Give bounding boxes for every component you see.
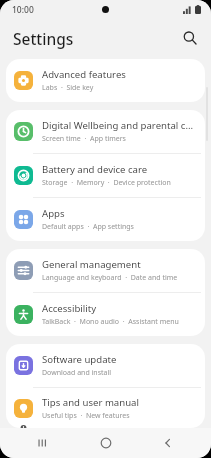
staticText: Software update [42, 353, 117, 366]
staticText: 10:00 [12, 4, 34, 16]
staticText: Settings [13, 28, 74, 49]
staticText: Accessibility [42, 302, 97, 315]
button[interactable]: Back [148, 428, 188, 458]
button[interactable]: Apps [6, 198, 205, 241]
button[interactable]: Home [86, 428, 126, 458]
button[interactable]: Software update [6, 344, 205, 387]
button[interactable]: Advanced features [6, 59, 205, 102]
staticText: Tips and user manual [42, 396, 139, 409]
staticText: Language and keyboard · Date and time [42, 273, 178, 283]
staticText: Battery and device care [42, 163, 148, 176]
button[interactable]: General management [6, 249, 205, 292]
staticText: Advanced features [42, 68, 126, 81]
staticText: Default apps · App settings [42, 222, 134, 232]
button[interactable]: Battery and device care [6, 154, 205, 197]
staticText: Download and install [42, 368, 112, 378]
button[interactable]: Digital Wellbeing and parental controls [6, 110, 205, 153]
staticText: Screen time · App timers [42, 134, 126, 144]
button[interactable]: Accessibility [6, 293, 205, 336]
button[interactable]: Search [177, 25, 203, 51]
staticText: Digital Wellbeing and parental controls [42, 119, 197, 132]
staticText: Apps [42, 207, 65, 220]
staticText: General management [42, 258, 141, 271]
staticText: TalkBack · Mono audio · Assistant menu [42, 317, 179, 327]
staticText: Useful tips · New features [42, 411, 130, 421]
button[interactable]: Recents [23, 428, 63, 458]
staticText: Labs · Side key [42, 83, 94, 93]
button[interactable]: Tips and user manual [6, 388, 205, 428]
staticText: Storage · Memory · Device protection [42, 178, 171, 188]
